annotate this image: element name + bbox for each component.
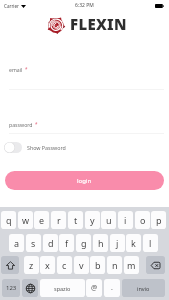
- staticText: FLEXIN: [70, 14, 127, 34]
- staticText: o: [140, 214, 146, 226]
- button[interactable]: v: [74, 256, 89, 274]
- button[interactable]: x: [40, 256, 55, 274]
- staticText: e: [39, 214, 45, 226]
- button[interactable]: d: [43, 234, 58, 252]
- staticText: m: [127, 259, 136, 271]
- button[interactable]: i: [118, 211, 133, 229]
- staticText: v: [79, 259, 84, 271]
- staticText: h: [98, 237, 104, 249]
- button[interactable]: h: [93, 234, 108, 252]
- button[interactable]: Switch language: [22, 279, 38, 297]
- staticText: login: [77, 177, 92, 185]
- staticText: .: [111, 283, 113, 293]
- button[interactable]: invio: [122, 279, 165, 297]
- staticText: k: [131, 237, 136, 249]
- button[interactable]: @: [86, 279, 102, 297]
- staticText: *: [35, 121, 38, 127]
- staticText: i: [124, 214, 127, 226]
- button[interactable]: n: [107, 256, 122, 274]
- staticText: f: [65, 237, 69, 249]
- button[interactable]: .: [104, 279, 120, 297]
- staticText: spazio: [54, 285, 71, 292]
- staticText: password: [9, 121, 33, 128]
- button[interactable]: w: [18, 211, 33, 229]
- button[interactable]: m: [124, 256, 139, 274]
- button[interactable]: k: [126, 234, 141, 252]
- staticText: r: [57, 214, 61, 226]
- button[interactable]: p: [151, 211, 166, 229]
- staticText: Show Password: [27, 144, 66, 151]
- button[interactable]: e: [34, 211, 49, 229]
- staticText: Carrier: [4, 3, 19, 9]
- staticText: email: [9, 66, 23, 73]
- button[interactable]: Backspace: [146, 256, 165, 274]
- staticText: c: [62, 259, 67, 271]
- staticText: j: [116, 237, 119, 249]
- button[interactable]: c: [57, 256, 72, 274]
- staticText: 123: [6, 284, 17, 292]
- staticText: u: [106, 214, 112, 226]
- staticText: @: [91, 283, 98, 293]
- staticText: invio: [137, 285, 150, 292]
- button[interactable]: o: [135, 211, 150, 229]
- button[interactable]: s: [26, 234, 41, 252]
- staticText: a: [14, 237, 20, 249]
- button[interactable]: f: [59, 234, 74, 252]
- button[interactable]: spazio: [40, 279, 85, 297]
- button[interactable]: r: [51, 211, 66, 229]
- staticText: l: [149, 237, 152, 249]
- button[interactable]: b: [90, 256, 105, 274]
- staticText: y: [90, 214, 95, 226]
- button[interactable]: g: [76, 234, 91, 252]
- staticText: z: [29, 259, 34, 271]
- button[interactable]: z: [24, 256, 39, 274]
- button[interactable]: t: [68, 211, 83, 229]
- button[interactable]: q: [1, 211, 16, 229]
- staticText: w: [22, 214, 30, 226]
- staticText: p: [156, 214, 162, 226]
- button[interactable]: u: [101, 211, 116, 229]
- button[interactable]: j: [110, 234, 125, 252]
- button[interactable]: y: [85, 211, 100, 229]
- button[interactable]: Shift: [1, 256, 19, 274]
- button[interactable]: 123: [2, 279, 20, 297]
- staticText: b: [95, 259, 101, 271]
- staticText: 6:32 PM: [75, 2, 94, 9]
- button[interactable]: a: [9, 234, 24, 252]
- staticText: q: [6, 214, 12, 226]
- staticText: t: [74, 214, 78, 226]
- staticText: s: [31, 237, 36, 249]
- button[interactable]: login: [5, 171, 164, 190]
- staticText: g: [81, 237, 87, 249]
- button[interactable]: Show Password: [4, 139, 66, 155]
- staticText: n: [112, 259, 118, 271]
- staticText: x: [45, 259, 50, 271]
- staticText: d: [48, 237, 54, 249]
- staticText: *: [25, 66, 28, 72]
- button[interactable]: l: [143, 234, 158, 252]
